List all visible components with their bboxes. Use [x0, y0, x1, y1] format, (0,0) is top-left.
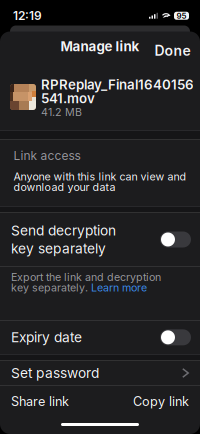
button[interactable]: Toggle: [160, 231, 191, 247]
staticText: Expiry date: [11, 329, 82, 346]
staticText: Share link: [11, 394, 69, 409]
staticText: Learn more: [91, 281, 147, 294]
staticText: key separately.: [11, 281, 91, 294]
staticText: Manage link: [60, 38, 139, 54]
button[interactable]: Set password: [0, 365, 200, 381]
staticText: 41.2 MB: [41, 106, 82, 119]
staticText: 95: [176, 11, 186, 21]
staticText: key separately: [11, 240, 106, 257]
staticText: Done: [154, 42, 190, 59]
button[interactable]: Copy link: [127, 386, 195, 417]
staticText: 12:19: [13, 8, 42, 23]
staticText: Set password: [11, 365, 99, 381]
staticText: Copy link: [133, 394, 189, 409]
staticText: Export the link and decryption: [11, 271, 161, 284]
button[interactable]: Done: [147, 36, 197, 65]
button[interactable]: Learn more: [91, 281, 147, 294]
button[interactable]: Toggle: [160, 329, 191, 345]
staticText: RPReplay_Final1640156: [41, 77, 194, 93]
button[interactable]: Share link: [5, 386, 75, 417]
staticText: download your data: [13, 181, 115, 193]
staticText: 541.mov: [41, 90, 95, 106]
staticText: Link access: [13, 148, 80, 163]
staticText: Send decryption: [11, 222, 116, 239]
staticText: Anyone with this link can view and: [13, 170, 186, 183]
